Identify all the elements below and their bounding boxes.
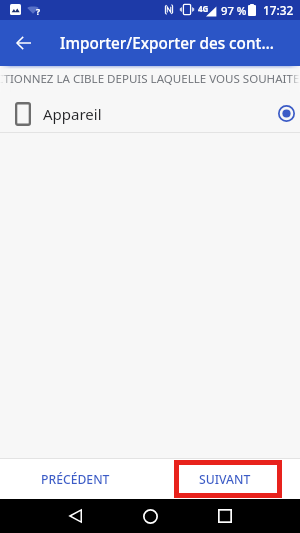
staticText: 17:32 — [263, 2, 294, 18]
button[interactable]: Retour — [0, 20, 46, 66]
button[interactable]: PRÉCÉDENT — [0, 459, 150, 499]
button[interactable]: Accueil — [126, 499, 174, 533]
staticText: ? — [36, 6, 41, 18]
staticText: SÉLECTIONNEZ LA CIBLE DEPUIS LAQUELLE VO… — [0, 71, 300, 87]
button[interactable]: Retour — [51, 499, 99, 533]
staticText: 97 % — [221, 3, 247, 18]
button[interactable]: Applications récentes — [201, 499, 249, 533]
staticText: 4G — [198, 3, 209, 14]
button[interactable]: Appareil — [0, 92, 300, 132]
staticText: Importer/Exporter des cont… — [60, 33, 274, 54]
button[interactable]: SUIVANT — [150, 459, 300, 499]
staticText: PRÉCÉDENT — [41, 471, 110, 488]
staticText: Appareil — [43, 104, 102, 124]
staticText: SUIVANT — [199, 471, 251, 488]
